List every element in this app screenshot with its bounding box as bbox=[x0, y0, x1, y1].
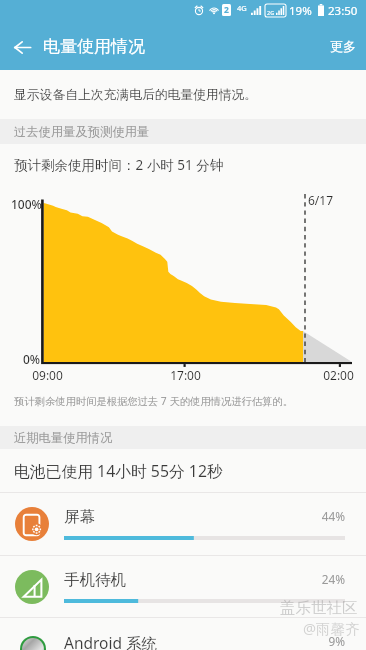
staticText: 电池已使用 14小时 55分 12秒 bbox=[14, 460, 223, 482]
staticText: 23:50 bbox=[328, 3, 358, 19]
staticText: 09:00 bbox=[32, 367, 63, 383]
staticText: 更多 bbox=[330, 38, 356, 54]
button[interactable]: 手机待机 bbox=[0, 556, 366, 618]
button[interactable]: 更多 bbox=[320, 22, 366, 70]
staticText: 预计剩余使用时间是根据您过去 7 天的使用情况进行估算的。 bbox=[14, 394, 293, 408]
button[interactable]: 屏幕 bbox=[0, 493, 366, 555]
button[interactable]: Android 系统 bbox=[0, 618, 366, 650]
staticText: 19% bbox=[289, 3, 312, 19]
staticText: 显示设备自上次充满电后的电量使用情况。 bbox=[14, 87, 258, 103]
staticText: Android 系统 bbox=[64, 632, 158, 650]
staticText: 6/17 bbox=[308, 192, 334, 208]
staticText: 24% bbox=[321, 571, 345, 587]
staticText: 盖乐世社区 bbox=[280, 598, 358, 618]
staticText: 2G bbox=[267, 9, 275, 16]
staticText: 预计剩余使用时间：2 小时 51 分钟 bbox=[14, 156, 224, 174]
staticText: 100% bbox=[11, 196, 42, 212]
staticText: 电量使用情况 bbox=[43, 36, 145, 57]
staticText: 2 bbox=[224, 4, 229, 16]
staticText: 9% bbox=[328, 633, 345, 649]
staticText: 近期电量使用情况 bbox=[14, 430, 113, 445]
button[interactable]: Back bbox=[7, 32, 37, 62]
staticText: 44% bbox=[321, 508, 345, 524]
staticText: 屏幕 bbox=[64, 507, 95, 527]
staticText: 过去使用量及预测使用量 bbox=[14, 124, 150, 139]
staticText: 17:00 bbox=[170, 367, 201, 383]
staticText: @雨馨齐 bbox=[303, 618, 360, 638]
staticText: 手机待机 bbox=[64, 570, 126, 590]
staticText: 4G bbox=[237, 3, 247, 13]
staticText: 0% bbox=[23, 351, 41, 367]
staticText: 02:00 bbox=[323, 367, 354, 383]
